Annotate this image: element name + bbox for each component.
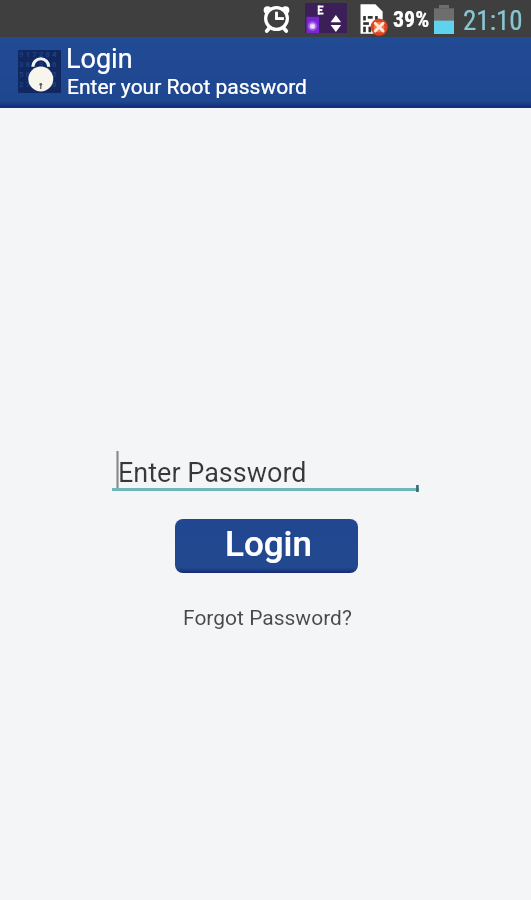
other: Battery 39 percent	[434, 5, 454, 34]
button[interactable]: Enter Password	[112, 448, 419, 491]
staticText: 3 8 2 3 9 6	[19, 60, 57, 69]
other: App icon	[18, 50, 61, 93]
staticText: Enter your Root password	[67, 75, 307, 100]
other: Alarm	[264, 4, 289, 32]
other: No SIM card	[358, 4, 386, 34]
staticText: 21:10	[463, 5, 523, 37]
staticText: 39%	[393, 7, 430, 33]
staticText: 5 6 1 7 1 2	[19, 70, 57, 79]
staticText: Enter Password	[118, 457, 307, 489]
staticText: Login	[225, 524, 313, 565]
staticText: Login	[66, 43, 133, 75]
staticText: Forgot Password?	[183, 606, 352, 631]
button[interactable]: Login	[175, 519, 358, 573]
staticText: 9 1 7 2 8 4	[19, 50, 57, 59]
staticText: 2 7 5 4 0 8	[19, 80, 57, 89]
button[interactable]: Forgot Password?	[0, 601, 531, 637]
other: Mobile data	[305, 3, 347, 33]
